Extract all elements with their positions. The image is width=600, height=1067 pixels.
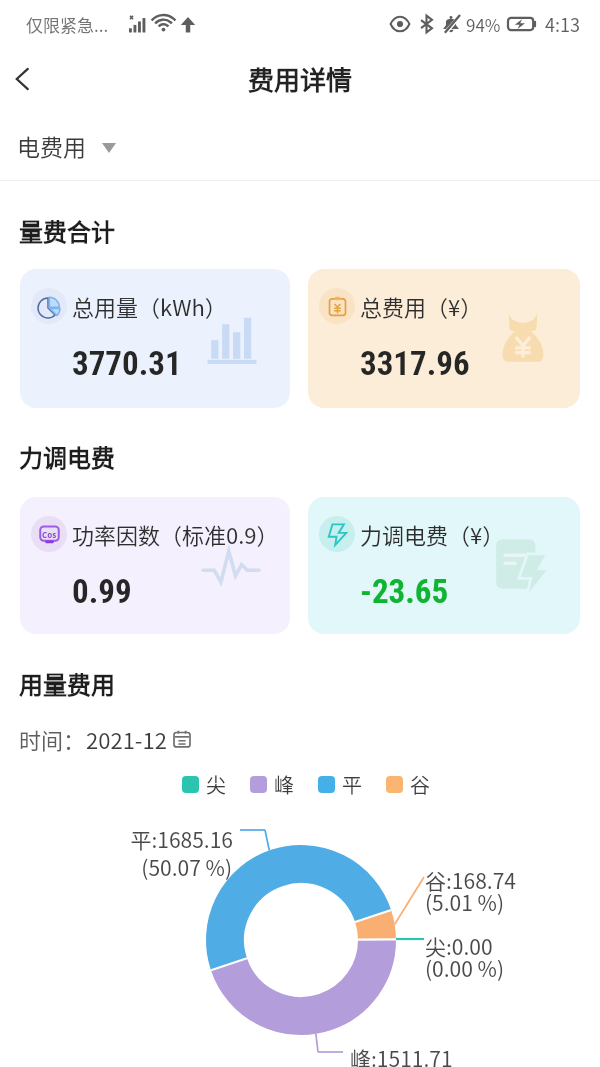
staticText: 仅限紧急... [26,12,109,37]
staticText: 平:1685.16 [110,824,233,854]
staticText: 费用详情 [248,60,353,98]
staticText: 4:13 [545,11,580,37]
staticText: (5.01 %) [425,887,505,917]
staticText: 3770.31 [72,344,182,383]
staticText: 谷 [410,770,430,799]
button[interactable]: 时间： [19,723,191,755]
staticText: 94% [466,12,501,37]
staticText: 总用量（kWh） [72,290,227,322]
button[interactable]: 总费用（¥） [308,269,580,408]
staticText: 峰 [274,770,294,799]
staticText: 总费用（¥） [360,290,483,322]
button[interactable]: Cos [20,497,290,634]
staticText: (0.00 %) [425,953,505,983]
staticText: Cos [42,529,57,540]
button[interactable]: 总用量（kWh） [20,269,290,408]
staticText: 电费用 [17,129,86,162]
staticText: 力调电费（¥） [360,518,505,550]
staticText: 力调电费 [19,439,115,474]
staticText: 尖:0.00 [425,931,493,961]
staticText: 功率因数（标准0.9） [72,518,279,550]
staticText: 3317.96 [360,344,470,383]
staticText: 峰:1511.71 [350,1043,453,1067]
button[interactable]: 电费用 [17,110,600,180]
staticText: 2021-12 [86,723,167,755]
staticText: 量费合计 [19,213,115,248]
staticText: -23.65 [360,572,449,611]
button[interactable]: Back [0,56,46,102]
staticText: (50.07 %) [110,852,232,882]
staticText: 0.99 [72,572,132,611]
staticText: 尖 [206,770,226,799]
button[interactable]: 力调电费（¥） [308,497,580,634]
staticText: 谷:168.74 [425,865,516,895]
staticText: 时间： [19,723,86,755]
staticText: 平 [342,770,362,799]
staticText: 用量费用 [19,666,115,701]
